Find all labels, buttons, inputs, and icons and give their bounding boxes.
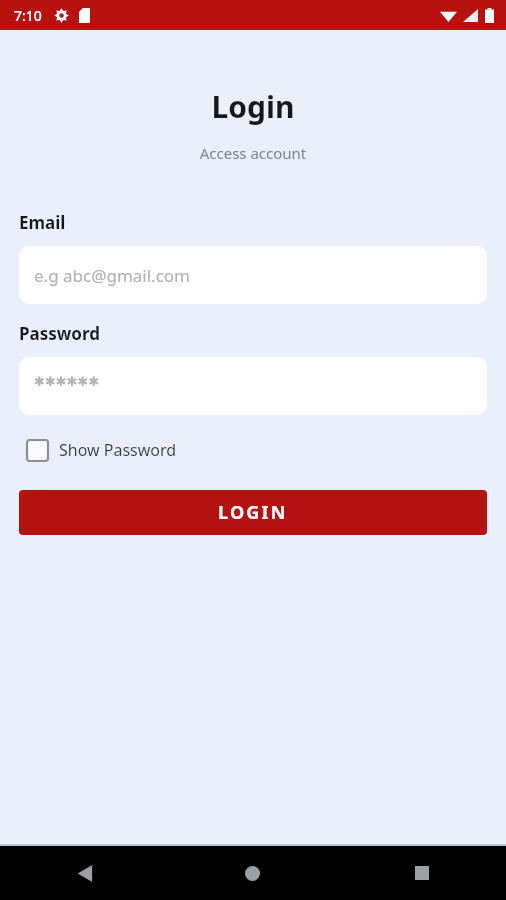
staticText: Access account — [0, 143, 506, 163]
staticText: ✱✱✱✱✱✱ — [34, 374, 100, 389]
staticText: LOGIN — [218, 500, 288, 525]
button[interactable]: e.g abc@gmail.com — [19, 246, 487, 304]
button[interactable]: Back — [0, 846, 168, 900]
staticText: Password — [19, 322, 100, 345]
staticText: 7:10 — [14, 6, 42, 25]
button[interactable]: Recent apps — [337, 846, 506, 900]
button[interactable]: LOGIN — [19, 490, 487, 535]
staticText: e.g abc@gmail.com — [34, 264, 191, 287]
staticText: Login — [0, 86, 506, 127]
staticText: Email — [19, 211, 66, 234]
button[interactable]: Home — [168, 846, 337, 900]
button[interactable]: ✱✱✱✱✱✱ — [19, 357, 487, 415]
button[interactable]: Show Password — [19, 435, 185, 465]
staticText: Show Password — [59, 439, 177, 461]
